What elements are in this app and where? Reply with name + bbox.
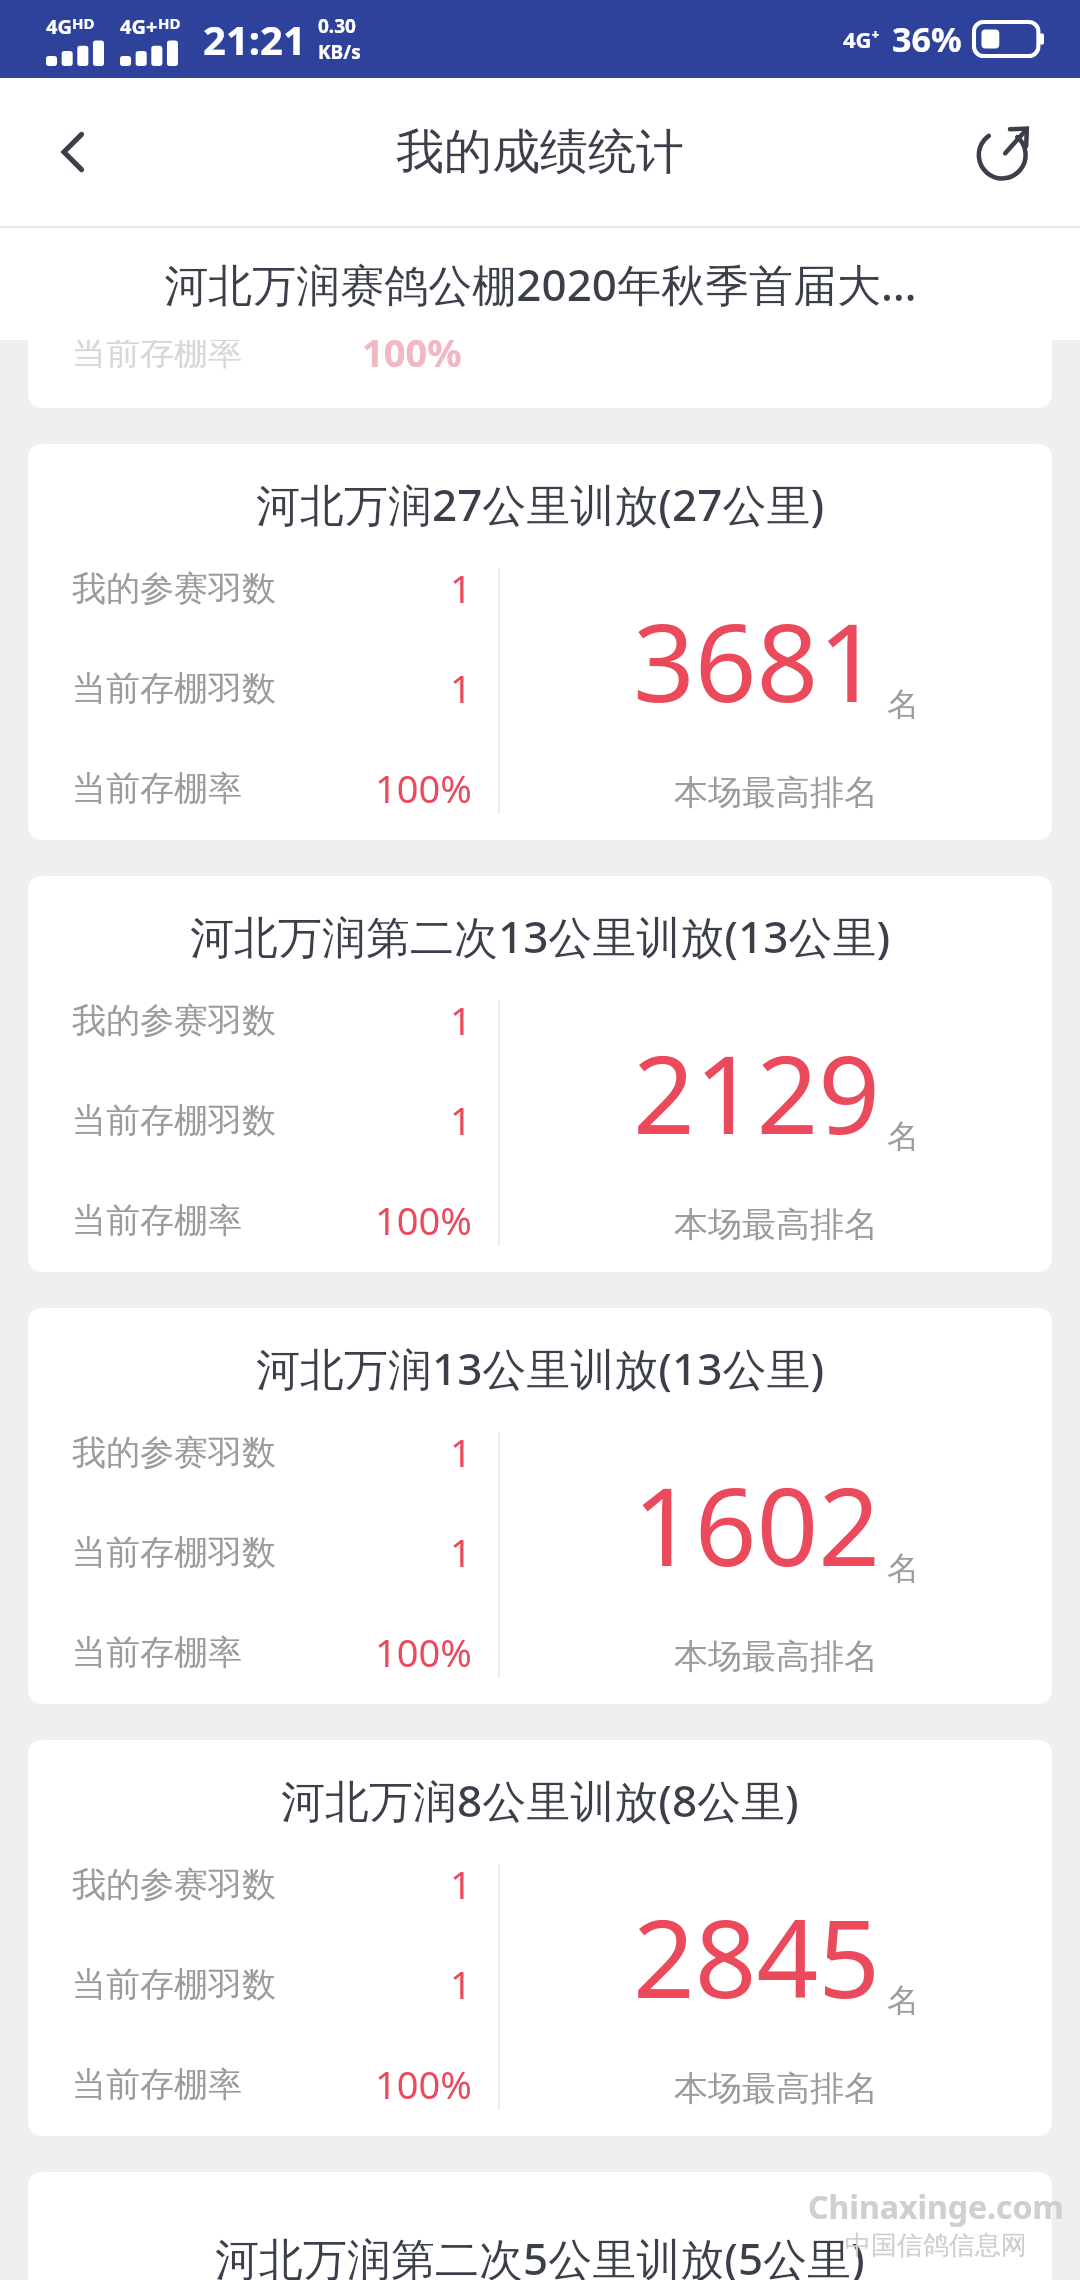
staticText: 当前存棚羽数 — [72, 1963, 276, 2006]
staticText: 本场最高排名 — [674, 1203, 878, 1246]
button[interactable]: Back — [22, 100, 126, 204]
staticText: 中国信鸽信息网 — [845, 2229, 1027, 2262]
staticText: 当前存棚率 — [72, 1199, 242, 1242]
staticText: 1 — [450, 1426, 472, 1478]
staticText: 1 — [450, 1958, 472, 2010]
staticText: HD — [72, 13, 95, 33]
staticText: 100% — [375, 1194, 472, 1246]
button[interactable]: 河北万润第二次13公里训放(13公里) — [28, 876, 1052, 1272]
staticText: 我的参赛羽数 — [72, 1863, 276, 1906]
staticText: 0.30 — [318, 13, 356, 39]
staticText: 我的参赛羽数 — [72, 1431, 276, 1474]
button[interactable]: 河北万润第二次5公里训放(5公里) — [28, 2172, 1052, 2280]
staticText: 4G — [46, 13, 72, 40]
staticText: 当前存棚羽数 — [72, 667, 276, 710]
staticText: 1 — [450, 1858, 472, 1910]
staticText: 本场最高排名 — [674, 1635, 878, 1678]
staticText: HD — [158, 13, 181, 33]
staticText: 1602 — [633, 1451, 881, 1598]
staticText: 名 — [887, 1548, 919, 1588]
staticText: Chinaxinge.com — [808, 2185, 1064, 2229]
staticText: 名 — [887, 1980, 919, 2020]
staticText: 本场最高排名 — [674, 771, 878, 814]
staticText: 本场最高排名 — [674, 2067, 878, 2110]
staticText: 2129 — [633, 1019, 881, 1166]
staticText: 河北万润第二次13公里训放(13公里) — [190, 906, 891, 966]
staticText: 100% — [375, 762, 472, 814]
staticText: 河北万润27公里训放(27公里) — [256, 474, 825, 534]
button[interactable]: 河北万润8公里训放(8公里) — [28, 1740, 1052, 2136]
button[interactable]: 河北万润13公里训放(13公里) — [28, 1308, 1052, 1704]
staticText: 名 — [887, 684, 919, 724]
staticText: 1 — [450, 1526, 472, 1578]
staticText: 1 — [450, 994, 472, 1046]
staticText: 我的成绩统计 — [396, 122, 684, 182]
staticText: 1 — [450, 562, 472, 614]
staticText: 河北万润第二次5公里训放(5公里) — [215, 2228, 865, 2280]
staticText: 当前存棚羽数 — [72, 1531, 276, 1574]
staticText: 1 — [450, 662, 472, 714]
staticText: 当前存棚率 — [72, 2063, 242, 2106]
staticText: 4G⁺ — [843, 24, 880, 54]
staticText: 当前存棚率 — [72, 1631, 242, 1674]
staticText: 100% — [375, 1626, 472, 1678]
staticText: 河北万润赛鸽公棚2020年秋季首届大… — [164, 254, 917, 314]
staticText: 当前存棚率 — [72, 767, 242, 810]
staticText: 河北万润8公里训放(8公里) — [281, 1770, 799, 1830]
staticText: 100% — [375, 2058, 472, 2110]
button[interactable]: 当前存棚率 — [28, 340, 1052, 408]
staticText: 21:21 — [203, 12, 306, 66]
staticText: KB/s — [318, 39, 361, 65]
staticText: 36% — [892, 16, 962, 62]
staticText: 4G+ — [120, 13, 158, 40]
staticText: 当前存棚率 — [72, 340, 242, 374]
button[interactable]: 河北万润27公里训放(27公里) — [28, 444, 1052, 840]
staticText: 当前存棚羽数 — [72, 1099, 276, 1142]
staticText: 2845 — [633, 1883, 881, 2030]
staticText: 名 — [887, 1116, 919, 1156]
staticText: 100% — [362, 340, 462, 378]
staticText: 我的参赛羽数 — [72, 567, 276, 610]
staticText: 1 — [450, 1094, 472, 1146]
button[interactable]: Share — [952, 100, 1056, 204]
staticText: 我的参赛羽数 — [72, 999, 276, 1042]
staticText: 河北万润13公里训放(13公里) — [256, 1338, 825, 1398]
staticText: 3681 — [633, 587, 881, 734]
